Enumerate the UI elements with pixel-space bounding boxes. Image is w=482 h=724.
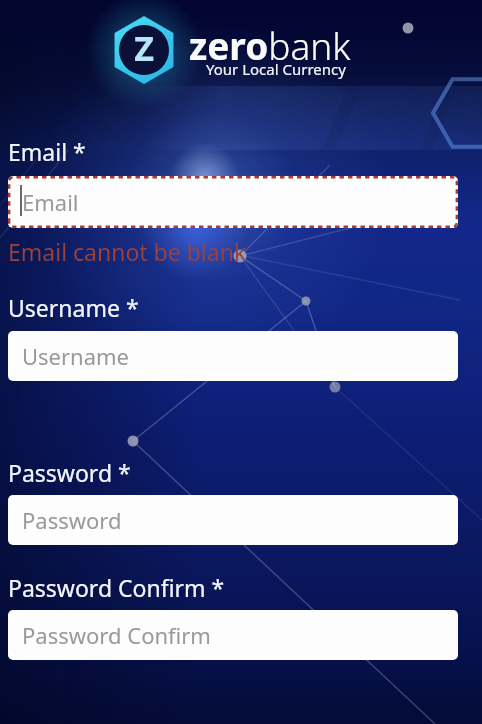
staticText: Username	[22, 341, 130, 371]
staticText: Password Confirm *	[8, 572, 225, 603]
staticText: Email cannot be blank	[8, 236, 247, 267]
staticText: Password Confirm	[22, 620, 211, 650]
button[interactable]: Password Confirm	[8, 610, 458, 660]
staticText: Z	[119, 25, 169, 71]
staticText: Email	[22, 187, 79, 217]
staticText: Password	[22, 505, 122, 535]
button[interactable]: zerobank	[189, 20, 351, 70]
button[interactable]: Email	[8, 176, 458, 228]
staticText: Your Local Currency	[206, 59, 346, 79]
staticText: Email *	[8, 136, 86, 167]
button[interactable]: Username	[8, 331, 458, 381]
staticText: Username *	[8, 292, 139, 323]
staticText: Password *	[8, 457, 131, 488]
button[interactable]: Password	[8, 495, 458, 545]
